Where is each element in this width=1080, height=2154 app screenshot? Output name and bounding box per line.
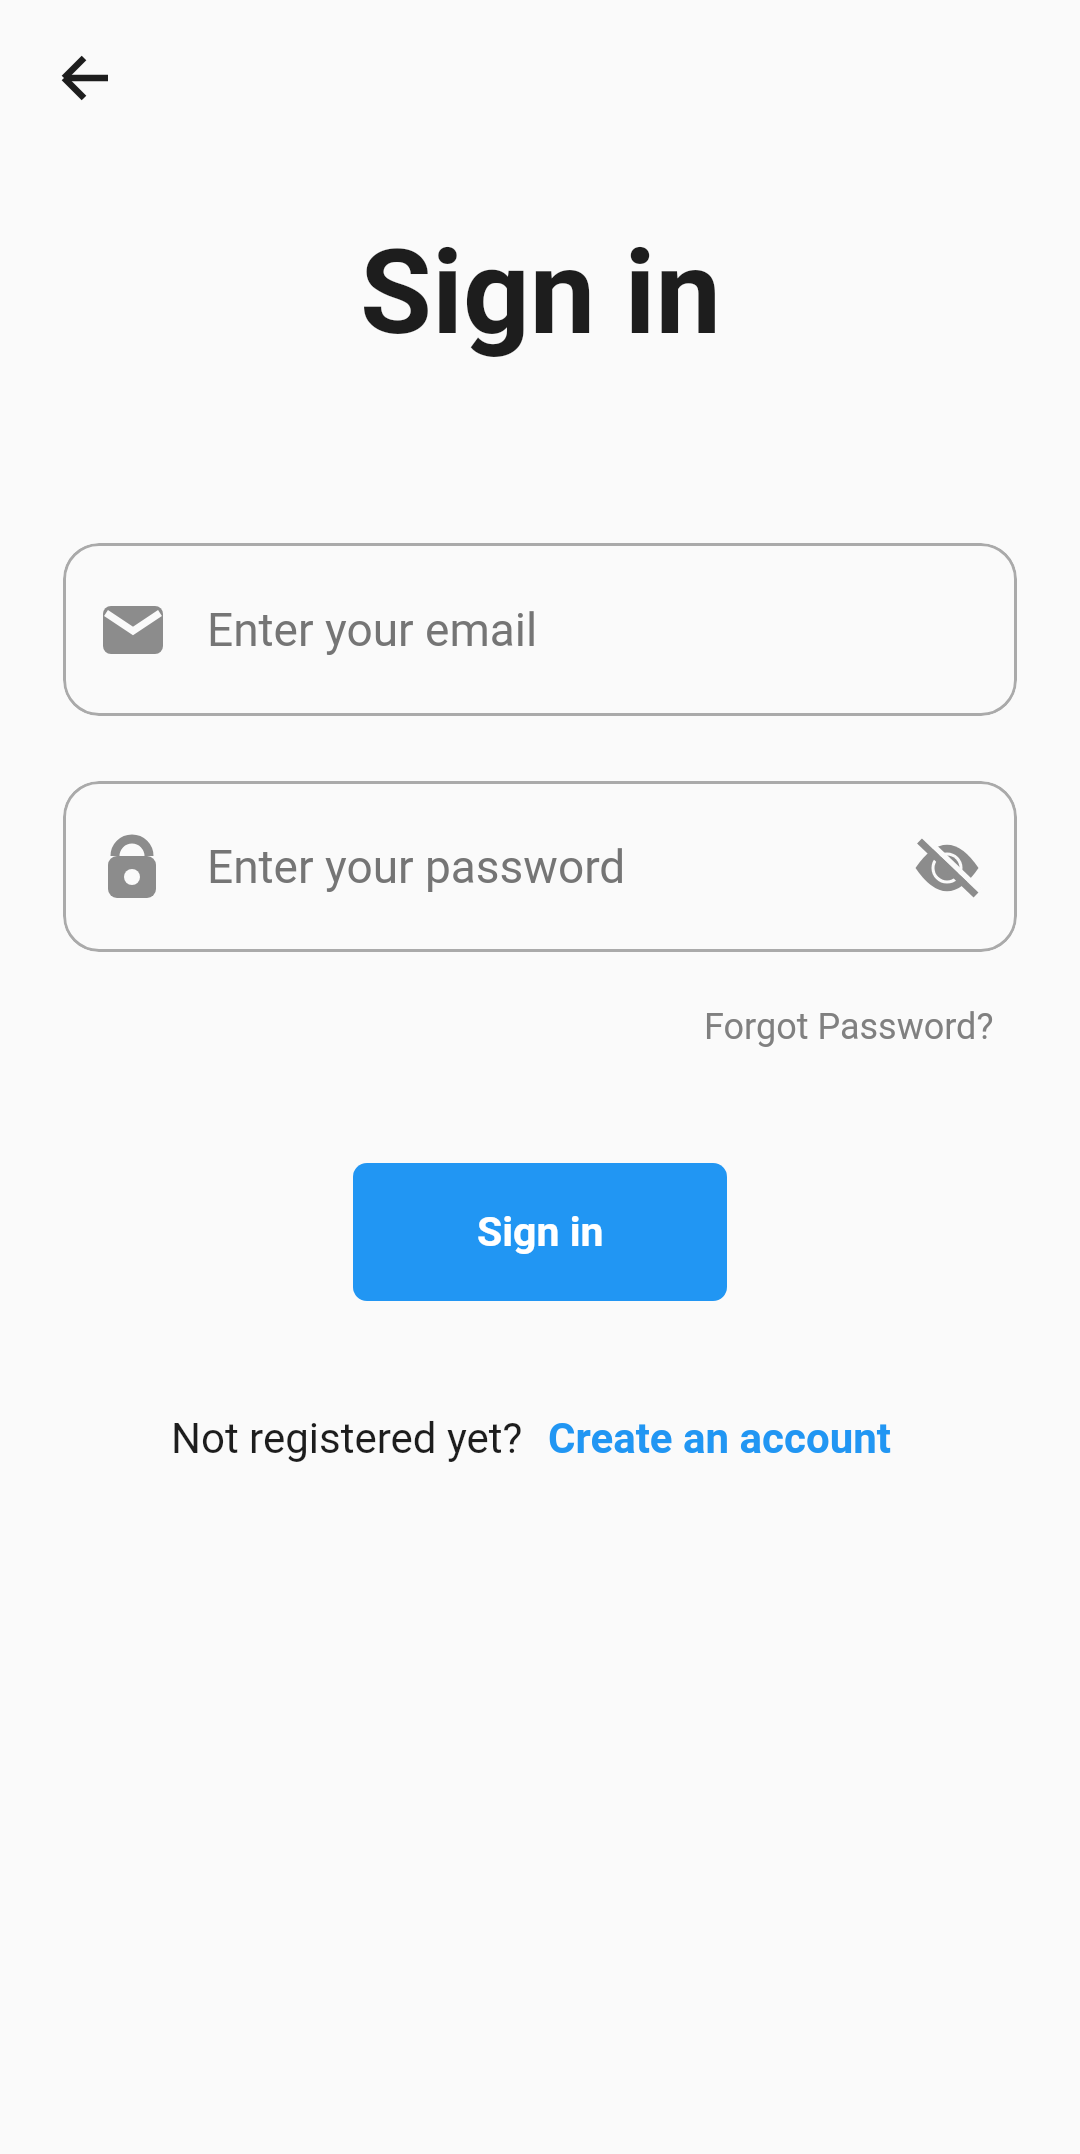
staticText: Enter your email	[207, 603, 538, 657]
staticText: Enter your password	[207, 840, 626, 894]
button[interactable]	[914, 834, 980, 900]
button[interactable]: Enter your password	[63, 781, 1017, 952]
staticText: Sign in	[477, 1208, 604, 1256]
button[interactable]: Forgot Password?	[704, 1006, 994, 1048]
staticText: Sign in	[360, 224, 721, 361]
button[interactable]	[48, 40, 124, 116]
staticText: Not registered yet?	[171, 1414, 523, 1463]
button[interactable]: Sign in	[353, 1163, 727, 1301]
button[interactable]: Create an account	[548, 1414, 891, 1463]
button[interactable]: Enter your email	[63, 543, 1017, 716]
